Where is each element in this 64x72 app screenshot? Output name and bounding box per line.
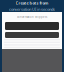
staticText: conversation UI in seconds bbox=[9, 6, 55, 12]
staticText: conversation snippets bbox=[17, 15, 47, 19]
staticText: Create bots from bbox=[15, 0, 48, 5]
